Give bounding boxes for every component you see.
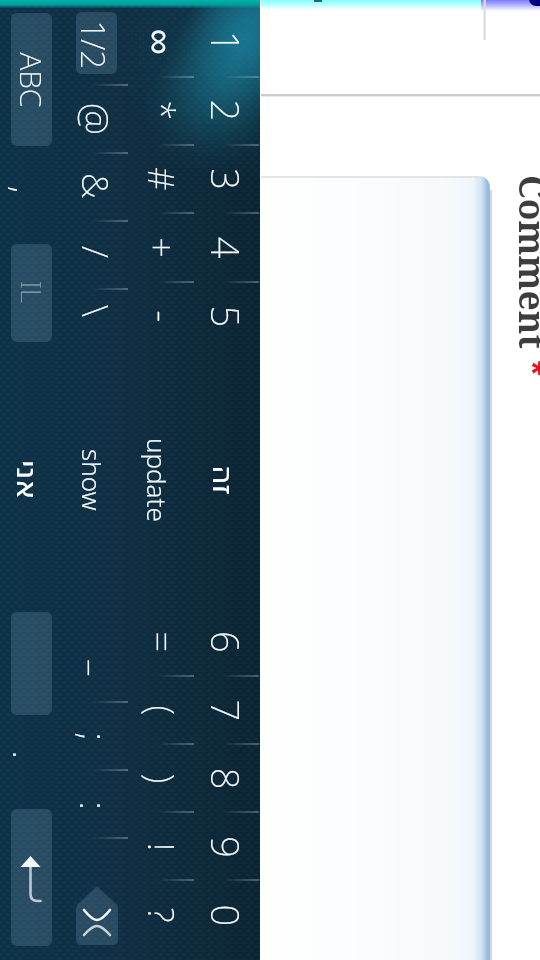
button[interactable]: On-screen keyboard [0, 0, 260, 960]
button[interactable] [240, 176, 490, 960]
